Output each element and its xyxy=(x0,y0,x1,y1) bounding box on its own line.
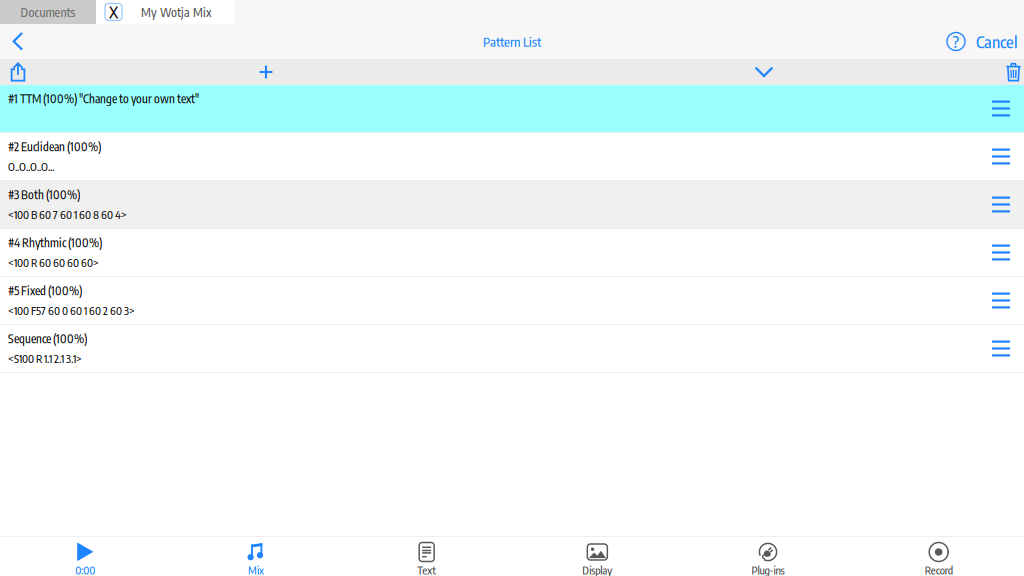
staticText: <100 B 60 7 60 1 60 8 60 4> xyxy=(8,208,127,221)
staticText: Mix xyxy=(248,563,264,576)
staticText: ? xyxy=(952,31,959,51)
button[interactable]: Documents xyxy=(0,0,96,24)
staticText: X xyxy=(109,2,118,22)
staticText: <100 R 60 60 60 60> xyxy=(8,256,99,269)
staticText: My Wotja Mix xyxy=(141,4,211,20)
staticText: #4 Rhythmic (100%) xyxy=(8,235,102,250)
staticText: <S100 R 1.1 2.1 3.1> xyxy=(8,352,82,365)
button[interactable]: Add pattern xyxy=(248,59,284,85)
button[interactable]: Record xyxy=(853,537,1024,576)
staticText: #5 Fixed (100%) xyxy=(8,283,82,298)
button[interactable]: Sequence (100%) xyxy=(0,325,1024,373)
staticText: Sequence (100%) xyxy=(8,331,87,346)
button[interactable]: #5 Fixed (100%) xyxy=(0,277,1024,325)
staticText: Pattern List xyxy=(483,33,541,50)
button[interactable]: Help xyxy=(947,24,965,59)
staticText: O..O..O..O... xyxy=(8,160,54,173)
button[interactable]: Text xyxy=(341,537,512,576)
staticText: Display xyxy=(582,563,612,576)
button[interactable]: #1 TTM (100%) "Change to your own text" xyxy=(0,85,1024,133)
button[interactable]: Delete xyxy=(1003,59,1023,85)
button[interactable]: X xyxy=(96,0,234,24)
button[interactable]: Display xyxy=(512,537,683,576)
button[interactable]: Share xyxy=(0,59,36,85)
button[interactable]: Back xyxy=(0,24,36,59)
button[interactable]: Mix xyxy=(171,537,341,576)
button[interactable]: Plug-ins xyxy=(683,537,853,576)
staticText: Record xyxy=(925,563,953,576)
staticText: 0:00 xyxy=(75,563,95,576)
staticText: #1 TTM (100%) "Change to your own text" xyxy=(8,91,199,106)
button[interactable]: More xyxy=(746,59,782,85)
staticText: Plug-ins xyxy=(751,563,784,576)
staticText: <100 F57 60 0 60 1 60 2 60 3> xyxy=(8,304,135,317)
staticText: Text xyxy=(417,563,436,576)
staticText: Cancel xyxy=(976,31,1018,52)
button[interactable]: #3 Both (100%) xyxy=(0,181,1024,229)
button[interactable]: #4 Rhythmic (100%) xyxy=(0,229,1024,277)
button[interactable]: #2 Euclidean (100%) xyxy=(0,133,1024,181)
staticText: #2 Euclidean (100%) xyxy=(8,139,101,154)
staticText: Documents xyxy=(20,4,75,20)
button[interactable]: Cancel xyxy=(976,24,1024,59)
staticText: #3 Both (100%) xyxy=(8,187,80,202)
button[interactable]: 0:00 xyxy=(0,537,171,576)
